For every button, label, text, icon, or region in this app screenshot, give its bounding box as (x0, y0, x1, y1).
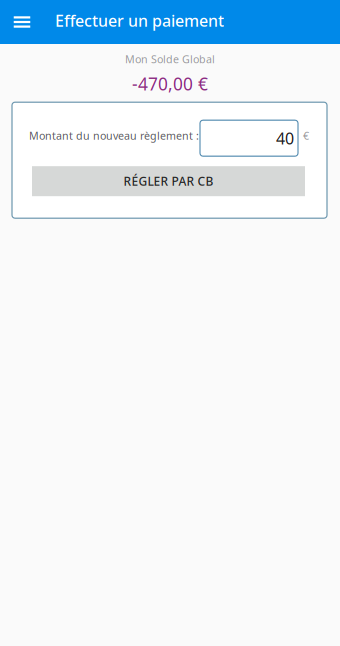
staticText: Effectuer un paiement (55, 10, 224, 31)
button[interactable]: Menu (7, 0, 37, 44)
staticText: € (303, 129, 309, 143)
staticText: Montant du nouveau règlement : (29, 129, 199, 143)
button[interactable]: Montant du nouveau règlement (200, 120, 298, 156)
staticText: RÉGLER PAR CB (123, 173, 213, 189)
staticText: -470,00 € (132, 72, 208, 95)
button[interactable]: RÉGLER PAR CB (32, 166, 305, 196)
staticText: 40 (276, 128, 294, 149)
staticText: Mon Solde Global (125, 52, 215, 66)
